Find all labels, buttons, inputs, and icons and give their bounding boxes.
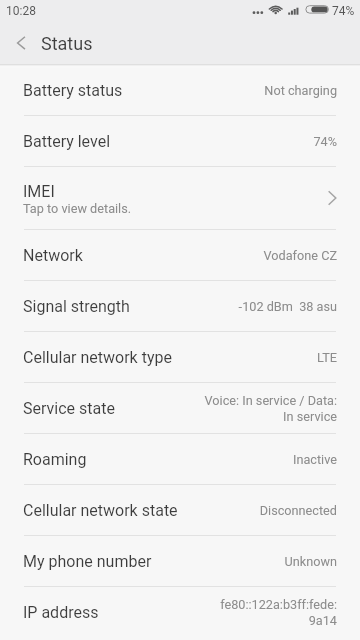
button[interactable]: Network: [0, 230, 360, 280]
staticText: Roaming: [23, 450, 87, 469]
staticText: IMEI: [23, 182, 55, 201]
staticText: Battery level: [23, 132, 111, 151]
staticText: Battery status: [23, 81, 123, 100]
button[interactable]: IMEI: [0, 167, 360, 229]
staticText: Tap to view details.: [23, 201, 132, 216]
button[interactable]: Battery level: [0, 116, 360, 166]
staticText: 74%: [313, 134, 337, 149]
staticText: fe80::122a:b3ff:fede: 9a14: [220, 597, 337, 628]
button[interactable]: Roaming: [0, 434, 360, 484]
staticText: Vodafone CZ: [263, 248, 337, 263]
button[interactable]: Cellular network state: [0, 485, 360, 535]
staticText: Status: [41, 33, 93, 54]
staticText: Unknown: [284, 554, 337, 569]
staticText: -102 dBm 38 asu: [238, 299, 337, 314]
staticText: LTE: [317, 350, 337, 365]
staticText: Service state: [23, 399, 115, 418]
staticText: My phone number: [23, 552, 152, 571]
staticText: 74%: [332, 4, 355, 18]
button[interactable]: My phone number: [0, 536, 360, 586]
button[interactable]: IP address: [0, 587, 360, 637]
button[interactable]: Cellular network type: [0, 332, 360, 382]
staticText: 10:28: [6, 4, 36, 18]
button[interactable]: Battery status: [0, 65, 360, 115]
button[interactable]: Navigate up: [0, 22, 41, 64]
staticText: Inactive: [292, 452, 337, 467]
staticText: Network: [23, 246, 83, 265]
staticText: Not charging: [264, 83, 337, 98]
staticText: Cellular network type: [23, 348, 172, 367]
staticText: Signal strength: [23, 297, 130, 316]
staticText: IP address: [23, 603, 99, 622]
button[interactable]: Signal strength: [0, 281, 360, 331]
button[interactable]: Service state: [0, 383, 360, 433]
staticText: Voice: In service / Data: In service: [204, 393, 337, 424]
staticText: Cellular network state: [23, 501, 178, 520]
staticText: Disconnected: [259, 503, 337, 518]
